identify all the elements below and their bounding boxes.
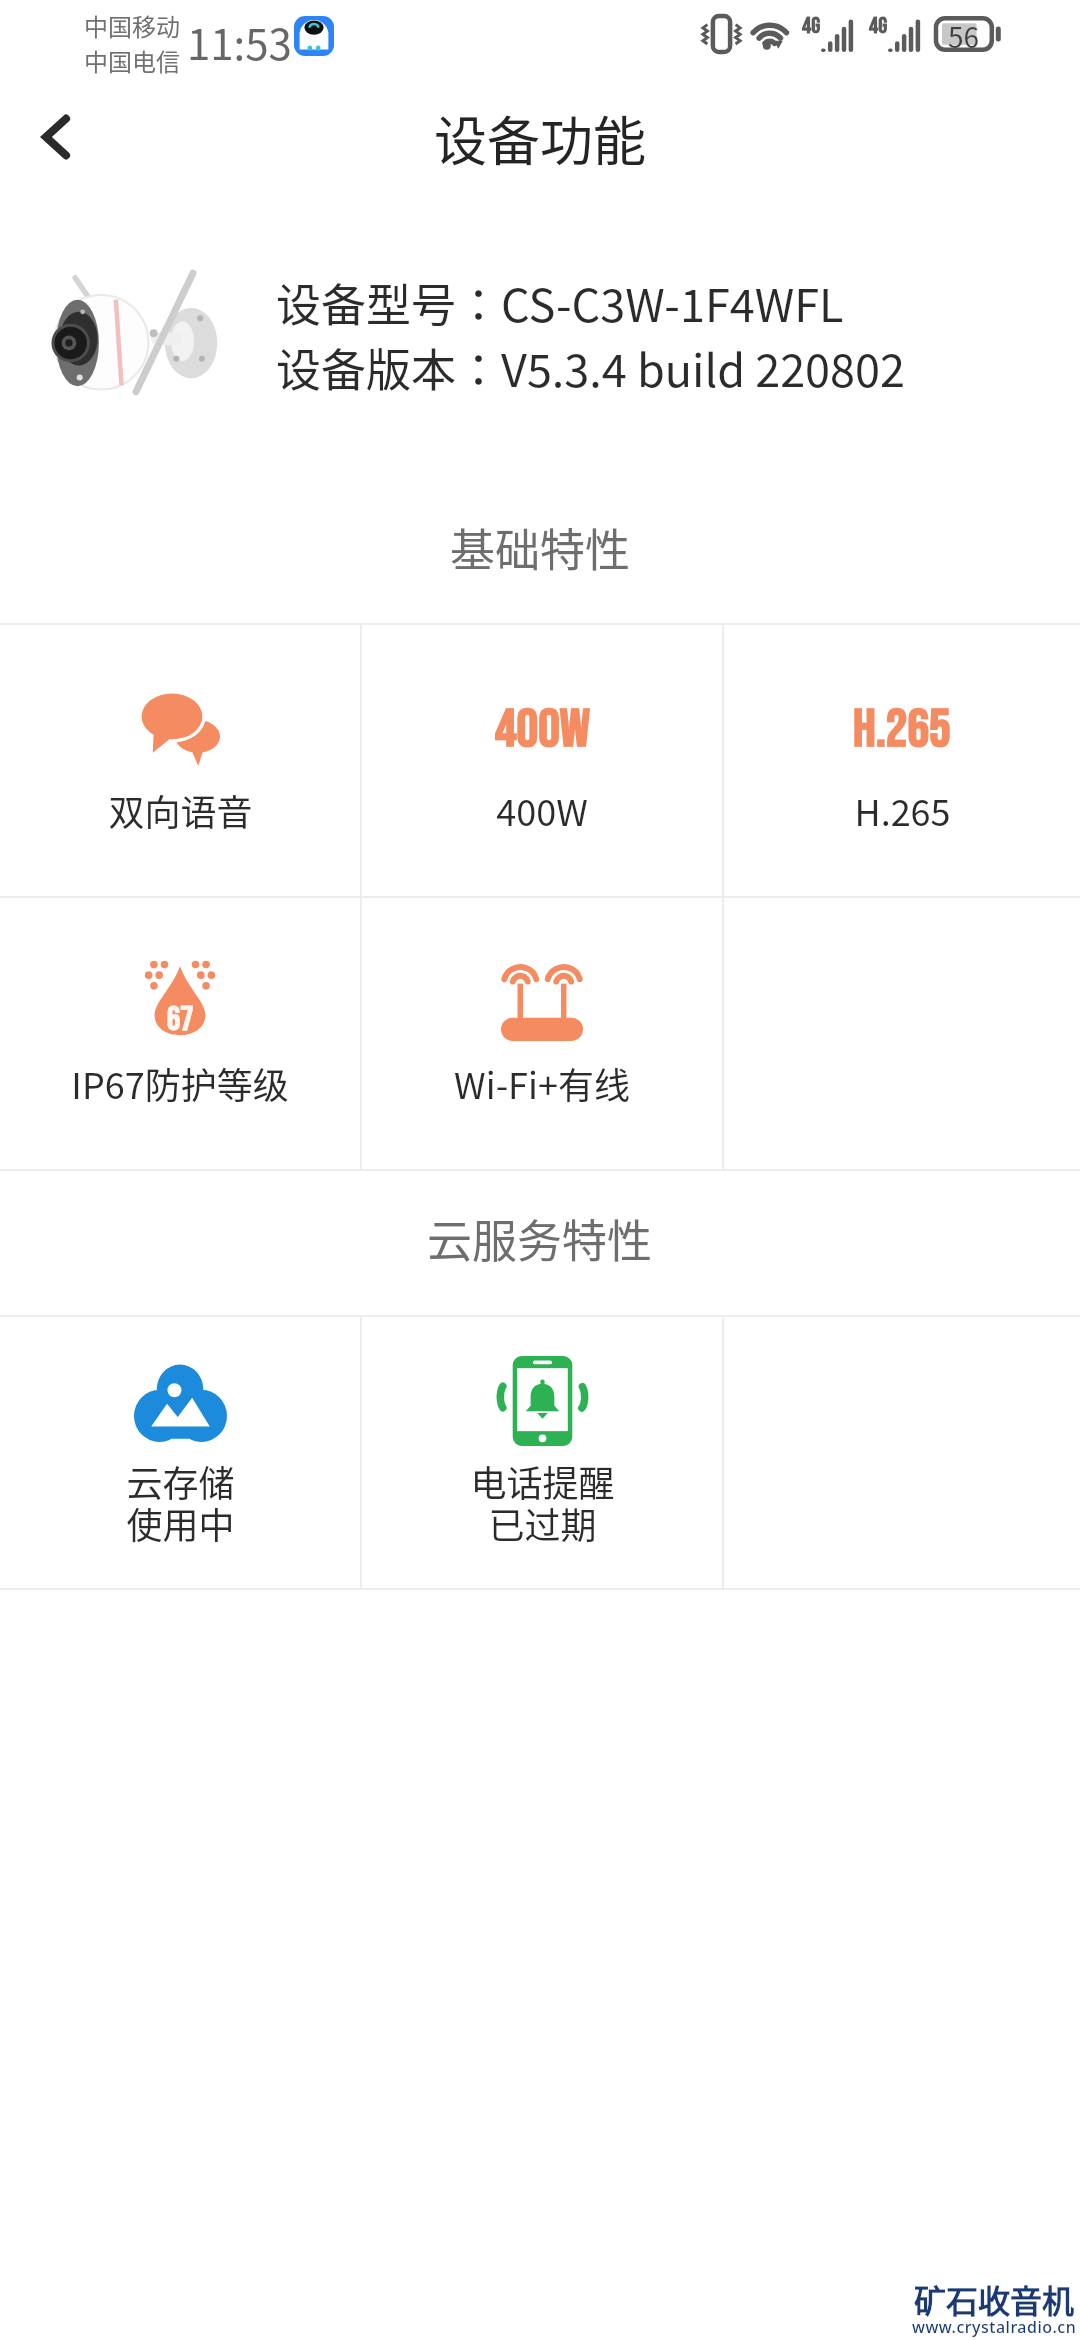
button[interactable]: 电话提醒 已过期: [362, 1317, 722, 1588]
staticText: 4G: [869, 12, 888, 40]
staticText: 67: [167, 1000, 194, 1040]
staticText: 双向语音: [108, 784, 253, 836]
staticText: 11:53: [187, 11, 292, 72]
button[interactable]: 双向语音: [0, 625, 360, 896]
staticText: 云服务特性: [427, 1206, 653, 1271]
button[interactable]: 云存储 使用中: [0, 1317, 360, 1588]
button[interactable]: H.265: [724, 625, 1080, 896]
staticText: 基础特性: [450, 515, 631, 580]
staticText: H.265: [854, 784, 951, 836]
button[interactable]: Wi-Fi+有线: [362, 898, 722, 1169]
staticText: 设备型号：CS-C3W-1F4WFL: [276, 270, 844, 335]
staticText: 400W: [495, 697, 590, 762]
staticText: 中国电信: [84, 43, 180, 78]
button[interactable]: Back: [8, 89, 104, 185]
staticText: 中国移动: [84, 8, 180, 43]
staticText: H.265: [853, 697, 951, 762]
button[interactable]: 67: [0, 898, 360, 1169]
staticText: Wi-Fi+有线: [454, 1057, 630, 1109]
staticText: 电话提醒 已过期: [470, 1455, 615, 1549]
staticText: 云存储 使用中: [126, 1455, 235, 1549]
staticText: IP67防护等级: [71, 1057, 289, 1109]
staticText: 矿石收音机: [914, 2276, 1075, 2322]
button[interactable]: 400W: [362, 625, 722, 896]
staticText: 设备版本：V5.3.4 build 220802: [276, 335, 906, 400]
staticText: www.crystalradio.cn: [912, 2316, 1077, 2338]
staticText: 400W: [496, 784, 588, 836]
staticText: 设备功能: [434, 100, 646, 177]
staticText: 56: [948, 16, 980, 52]
staticText: 4G: [802, 12, 821, 40]
